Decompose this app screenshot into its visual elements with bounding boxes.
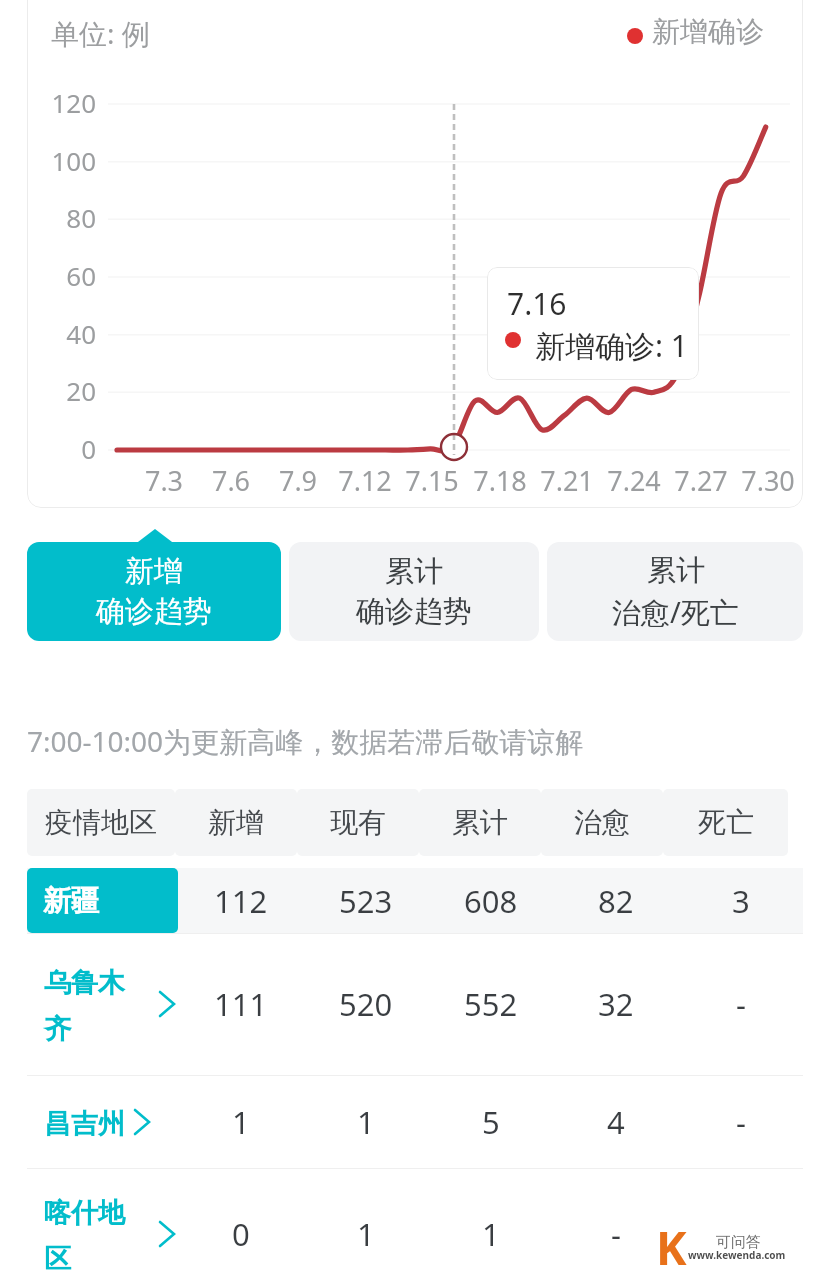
staticText: 确诊趋势: [356, 593, 472, 630]
staticText: 82: [598, 880, 634, 922]
staticText: www.kewenda.com: [688, 1248, 786, 1262]
staticText: 100: [28, 143, 96, 178]
staticText: 7.3: [119, 462, 209, 499]
staticText: 7.6: [186, 462, 276, 499]
staticText: 7.30: [723, 462, 803, 499]
staticText: 7.15: [387, 462, 477, 499]
staticText: 新增: [208, 805, 264, 840]
staticText: 可问答: [716, 1233, 761, 1252]
staticText: 552: [464, 983, 518, 1025]
button[interactable]: 累计: [547, 542, 803, 641]
staticText: 喀什地: [44, 1196, 125, 1230]
staticText: -: [736, 1101, 746, 1143]
button[interactable]: 累计: [289, 542, 539, 641]
button[interactable]: 昌吉州 details: [0, 1075, 830, 1168]
staticText: 7.16: [507, 283, 567, 324]
staticText: 累计: [385, 553, 443, 590]
staticText: 确诊趋势: [96, 593, 212, 630]
staticText: 新增: [125, 553, 183, 590]
staticText: 新疆: [43, 883, 99, 918]
staticText: 7.9: [253, 462, 343, 499]
staticText: 累计: [647, 552, 705, 589]
staticText: 1: [482, 1213, 500, 1255]
staticText: 7.12: [320, 462, 410, 499]
staticText: 608: [464, 880, 518, 922]
staticText: 32: [598, 983, 634, 1025]
staticText: 疫情地区: [45, 805, 157, 840]
staticText: 昌吉州: [44, 1107, 125, 1141]
staticText: 7.24: [589, 462, 679, 499]
staticText: 112: [214, 880, 268, 922]
button[interactable]: 喀什地区 details: [0, 1168, 830, 1276]
staticText: -: [736, 983, 746, 1025]
staticText: 治愈: [574, 805, 630, 840]
button[interactable]: 乌鲁木齐 details: [0, 933, 830, 1075]
staticText: 1: [357, 1101, 375, 1143]
staticText: 7:00-10:00为更新高峰，数据若滞后敬请谅解: [27, 722, 584, 760]
staticText: 齐: [44, 1012, 71, 1046]
staticText: 7.27: [656, 462, 746, 499]
staticText: 区: [44, 1242, 71, 1276]
staticText: 80: [28, 200, 96, 235]
staticText: 40: [28, 316, 96, 351]
staticText: 7.18: [455, 462, 545, 499]
staticText: 120: [28, 85, 96, 120]
staticText: 3: [732, 880, 750, 922]
staticText: 乌鲁木: [44, 966, 125, 1000]
staticText: 20: [28, 373, 96, 408]
other: Selected tab indicator: [134, 529, 176, 545]
staticText: 新增确诊: [652, 14, 764, 49]
staticText: 新增确诊: 1: [535, 325, 688, 366]
button[interactable]: 新疆 row: [27, 868, 803, 933]
staticText: 1: [232, 1101, 250, 1143]
staticText: 现有: [330, 805, 386, 840]
staticText: 0: [28, 431, 96, 466]
staticText: 4: [607, 1101, 625, 1143]
staticText: 0: [232, 1213, 250, 1255]
staticText: 治愈/死亡: [612, 592, 739, 632]
staticText: 1: [357, 1213, 375, 1255]
button[interactable]: 新增: [27, 542, 281, 641]
staticText: -: [611, 1213, 621, 1255]
staticText: 7.21: [522, 462, 612, 499]
staticText: 523: [339, 880, 393, 922]
staticText: 5: [482, 1101, 500, 1143]
staticText: 520: [339, 983, 393, 1025]
staticText: 60: [28, 258, 96, 293]
staticText: 单位: 例: [51, 14, 150, 52]
staticText: K: [656, 1216, 687, 1276]
staticText: 111: [214, 983, 268, 1025]
staticText: 累计: [452, 805, 508, 840]
staticText: 死亡: [698, 805, 754, 840]
